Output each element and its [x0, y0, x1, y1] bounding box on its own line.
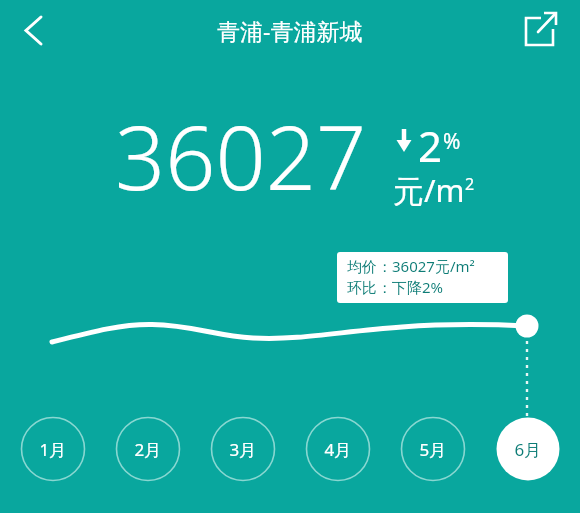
button[interactable]: 2月 — [116, 417, 180, 481]
button[interactable]: 1月 — [21, 417, 85, 481]
button[interactable]: 6月 — [496, 417, 560, 481]
button[interactable]: 5月 — [401, 417, 465, 481]
button[interactable]: Back — [8, 4, 60, 56]
button[interactable]: 3月 — [211, 417, 275, 481]
button[interactable]: Share — [512, 4, 566, 56]
button[interactable]: 4月 — [306, 417, 370, 481]
